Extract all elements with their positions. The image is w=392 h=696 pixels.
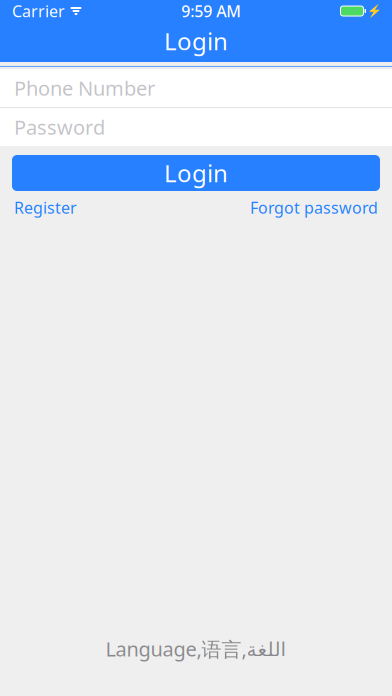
staticText: Password <box>14 114 105 140</box>
staticText: Forgot password <box>250 197 378 218</box>
staticText: Login <box>164 157 228 189</box>
button[interactable]: Forgot password <box>250 194 378 221</box>
staticText: ⚡ <box>367 4 382 18</box>
staticText: Login <box>164 25 228 57</box>
staticText: 9:59 AM <box>181 0 241 22</box>
button[interactable]: Language,语言,اللغة <box>97 631 294 666</box>
staticText: Phone Number <box>14 75 155 101</box>
staticText: Register <box>14 197 77 218</box>
staticText: Carrier <box>12 0 65 22</box>
staticText: Language,语言,اللغة <box>105 635 286 662</box>
button[interactable]: Register <box>14 194 77 221</box>
button[interactable]: Login <box>12 155 380 191</box>
